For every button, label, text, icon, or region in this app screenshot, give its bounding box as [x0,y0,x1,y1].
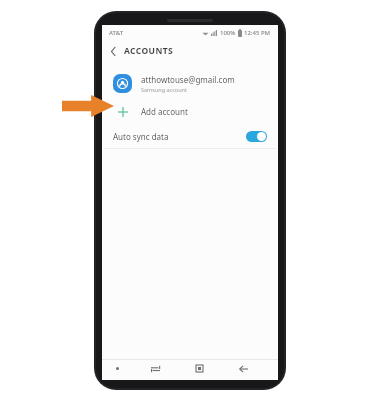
button[interactable]: Menu [102,360,133,377]
staticText: Samsung account [141,86,187,93]
staticText: ACCOUNTS [124,45,174,57]
button[interactable]: Back [221,360,265,377]
staticText: 12:45 PM [244,29,271,37]
button[interactable]: atthowtouse@gmail.com [102,68,278,98]
button[interactable]: Recents [133,360,177,377]
staticText: Add account [141,106,188,117]
staticText: Auto sync data [113,131,169,142]
button[interactable]: Add account [102,98,278,124]
button[interactable]: Back [102,40,124,62]
button[interactable]: Auto sync data [102,124,278,148]
staticText: 100% [220,29,236,37]
staticText: AT&T [109,29,124,37]
button[interactable]: Home [177,360,221,377]
button[interactable]: Auto sync data toggle [246,131,267,142]
staticText: atthowtouse@gmail.com [141,74,235,85]
